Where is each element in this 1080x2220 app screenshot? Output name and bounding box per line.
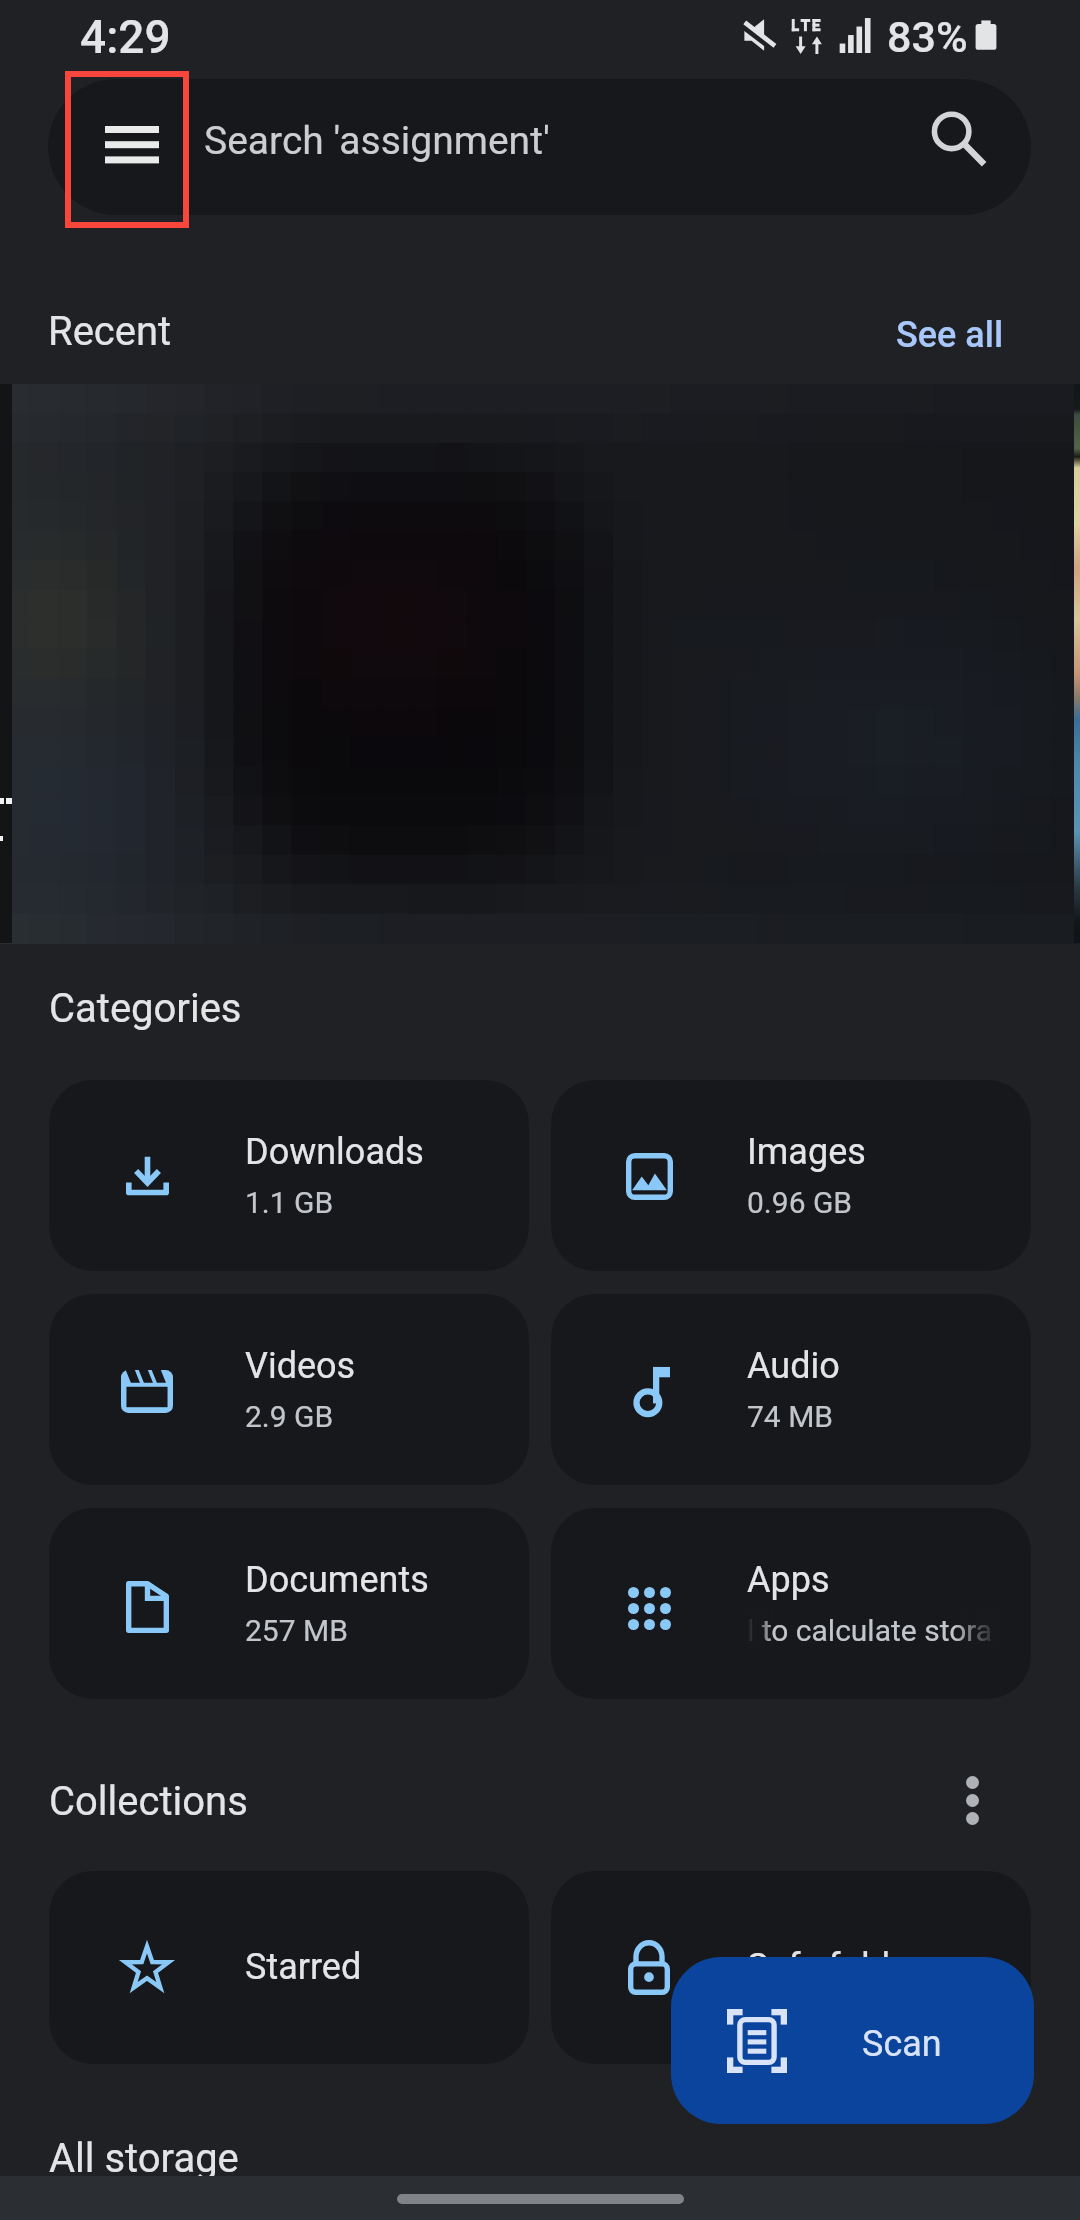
staticText: Videos: [245, 1345, 356, 1387]
button[interactable]: Images: [551, 1080, 1031, 1271]
staticText: Search 'assignment': [204, 118, 550, 164]
button[interactable]: Starred: [49, 1871, 529, 2064]
staticText: Scan: [862, 2023, 942, 2065]
staticText: 83%: [887, 12, 968, 62]
staticText: 2.9 GB: [245, 1399, 334, 1434]
staticText: Downloads: [245, 1131, 424, 1173]
button[interactable]: Scan: [671, 1957, 1034, 2124]
staticText: Images: [747, 1131, 866, 1173]
button[interactable]: Open navigation drawer: [70, 82, 194, 206]
button[interactable]: See all: [874, 290, 1026, 380]
button[interactable]: Videos: [49, 1294, 529, 1485]
staticText: l to calculate stora: [747, 1613, 993, 1648]
button[interactable]: More options: [930, 1758, 1014, 1842]
staticText: All storage: [49, 2135, 239, 2182]
staticText: See all: [896, 314, 1004, 356]
staticText: 4:29: [80, 10, 171, 64]
staticText: Categories: [49, 985, 242, 1032]
button[interactable]: Apps: [551, 1508, 1031, 1699]
button[interactable]: Downloads: [49, 1080, 529, 1271]
staticText: Audio: [747, 1345, 840, 1387]
staticText: Recent: [48, 308, 172, 355]
staticText: 1.1 GB: [245, 1185, 334, 1220]
button[interactable]: Search: [902, 82, 1012, 192]
button[interactable]: Documents: [49, 1508, 529, 1699]
staticText: 0.96 GB: [747, 1185, 853, 1220]
staticText: Starred: [245, 1946, 362, 1988]
staticText: 74 MB: [747, 1399, 834, 1434]
staticText: Safe folder: [747, 1946, 922, 1988]
staticText: Collections: [49, 1778, 248, 1825]
button[interactable]: Safe folder: [551, 1871, 1031, 2064]
staticText: Apps: [747, 1559, 830, 1601]
staticText: 257 MB: [245, 1613, 348, 1648]
staticText: Documents: [245, 1559, 429, 1601]
button[interactable]: Audio: [551, 1294, 1031, 1485]
